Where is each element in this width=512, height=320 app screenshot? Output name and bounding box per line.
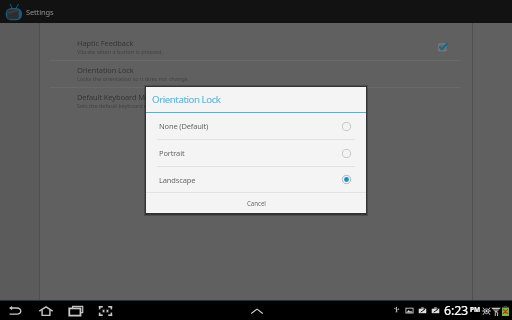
button[interactable]: None (Default) <box>146 113 366 139</box>
button[interactable]: Portrait <box>146 140 366 166</box>
button[interactable]: Haptic Feedback <box>40 34 472 60</box>
staticText: Haptic Feedback <box>77 38 134 48</box>
staticText: 6:23 <box>444 302 469 319</box>
button[interactable]: Back <box>6 301 25 320</box>
staticText: Sets the default keyboard mode. <box>77 102 161 110</box>
button[interactable]: Show notifications <box>247 301 266 320</box>
button[interactable]: Default Keyboard Mode <box>40 88 472 114</box>
staticText: Cancel <box>247 199 266 207</box>
button[interactable]: Landscape <box>146 167 366 192</box>
button[interactable]: Fullscreen <box>96 301 115 320</box>
staticText: None (Default) <box>159 121 209 131</box>
staticText: Default Keyboard Mode <box>77 92 158 102</box>
button[interactable]: Cancel <box>146 193 366 213</box>
staticText: Orientation Lock <box>152 93 221 106</box>
staticText: Settings <box>26 7 54 17</box>
staticText: Portrait <box>159 148 185 158</box>
button[interactable]: Orientation Lock <box>40 61 472 87</box>
staticText: PM <box>470 305 481 314</box>
staticText: Locks the orientation so it does not cha… <box>77 75 190 83</box>
staticText: Orientation Lock <box>77 65 134 75</box>
staticText: Vibrate when a button is pressed. <box>77 48 163 56</box>
button[interactable]: Home <box>36 301 55 320</box>
staticText: Landscape <box>159 175 196 185</box>
button[interactable]: Recent apps <box>66 301 85 320</box>
